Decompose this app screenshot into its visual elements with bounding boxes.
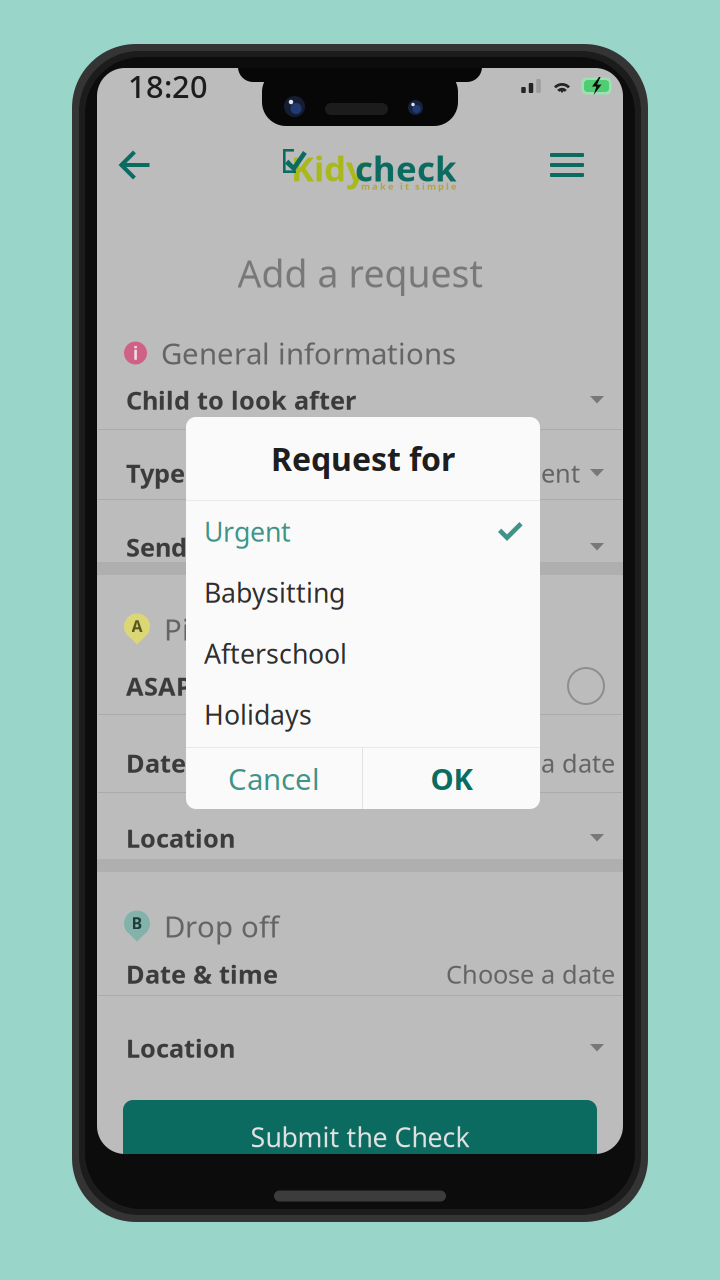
button[interactable]: Date & time [97, 951, 623, 997]
staticText: A [131, 615, 142, 637]
staticText: Kidy [291, 145, 366, 191]
staticText: Urgent [496, 456, 580, 490]
button[interactable]: Babysitting [186, 562, 540, 623]
staticText: Date & time [126, 746, 278, 780]
staticText: Child to look after [126, 383, 356, 417]
staticText: Request for [271, 437, 455, 480]
staticText: Type of request [126, 456, 322, 490]
staticText: OK [430, 759, 472, 798]
button[interactable]: Afterschool [186, 623, 540, 684]
staticText: Date & time [126, 957, 278, 991]
button[interactable]: Date & time [97, 740, 623, 786]
staticText: m a k e i t s i m p l e [361, 180, 457, 192]
button[interactable]: Send the request to [97, 524, 623, 570]
button[interactable]: Child to look after [97, 377, 623, 423]
button[interactable]: Cancel [186, 748, 362, 809]
button[interactable]: Holidays [186, 684, 540, 745]
staticText: Choose a date [446, 957, 615, 991]
staticText: Location [126, 1031, 235, 1065]
button[interactable]: Back [106, 136, 164, 194]
staticText: Send the request to [126, 530, 374, 564]
staticText: Pick up [164, 609, 264, 648]
staticText: check [355, 145, 456, 191]
button[interactable]: ASAP [97, 663, 623, 709]
staticText: ASAP [126, 669, 192, 703]
staticText: Location [126, 821, 235, 855]
staticText: Afterschool [204, 636, 347, 671]
button[interactable]: Location [97, 815, 623, 861]
button[interactable]: Submit the Check [123, 1100, 597, 1174]
staticText: Cancel [228, 759, 320, 798]
button[interactable]: Menu [538, 136, 596, 194]
button[interactable]: OK [363, 748, 540, 809]
staticText: B [131, 912, 142, 934]
button[interactable]: Urgent [186, 501, 540, 562]
staticText: Urgent [204, 514, 291, 549]
staticText: General informations [161, 333, 456, 372]
staticText: i [133, 341, 138, 364]
staticText: Add a request [237, 248, 482, 298]
staticText: Drop off [164, 906, 279, 945]
button[interactable]: Location [97, 1025, 623, 1071]
staticText: 18:20 [128, 66, 208, 106]
staticText: Babysitting [204, 575, 345, 610]
staticText: Submit the Check [250, 1119, 469, 1155]
staticText: Choose a date [446, 746, 615, 780]
button[interactable]: Type of request [97, 450, 623, 496]
staticText: Holidays [204, 697, 312, 732]
